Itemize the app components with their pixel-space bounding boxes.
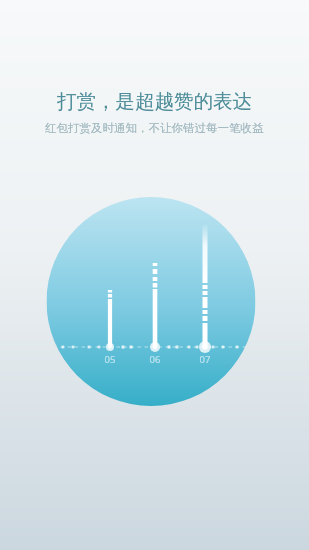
button[interactable] <box>0 0 309 550</box>
other: 打赏介绍页 <box>0 0 309 550</box>
